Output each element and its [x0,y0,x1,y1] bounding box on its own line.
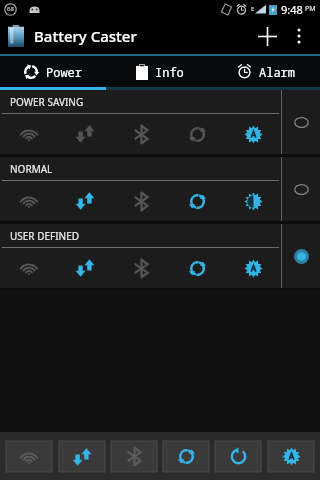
button[interactable]: Toggle [57,114,113,154]
staticText: PM [305,4,316,14]
button[interactable]: Toggle [57,181,113,221]
button[interactable]: Alarm [213,56,320,87]
button[interactable]: More options [284,21,314,51]
button[interactable]: Toggle [169,114,225,154]
staticText: POWER SAVING [10,95,84,109]
button[interactable]: Toggle [169,248,225,288]
button[interactable]: Toggle [113,248,169,288]
button[interactable]: Toggle [0,114,57,154]
button[interactable]: NORMAL [0,157,320,221]
button[interactable]: Power [0,56,106,87]
button[interactable]: Toggle [0,248,57,288]
button[interactable]: Toggle [57,248,113,288]
button[interactable]: Mobile data [59,441,105,472]
button[interactable]: POWER SAVING [0,90,320,154]
button[interactable]: Toggle [113,181,169,221]
staticText: Battery Caster [34,26,137,46]
staticText: Power [46,64,83,80]
button[interactable]: Add profile [250,19,284,53]
button[interactable]: USER DEFINED [0,224,320,288]
button[interactable]: Rotation [215,441,261,472]
button[interactable]: Brightness [268,441,314,472]
staticText: 68 [7,5,14,13]
staticText: USER DEFINED [10,229,80,243]
button[interactable]: Toggle [225,114,281,154]
button[interactable]: Info [106,56,213,87]
button[interactable]: Select USER DEFINED profile [282,224,320,288]
button[interactable]: Sync [163,441,209,472]
button[interactable]: Toggle [225,181,281,221]
button[interactable]: Bluetooth [111,441,157,472]
button[interactable]: Toggle [0,181,57,221]
staticText: Info [155,64,184,80]
button[interactable]: Toggle [225,248,281,288]
staticText: 9:48 [281,2,303,17]
button[interactable]: Select NORMAL profile [282,157,320,221]
button[interactable]: Wi-Fi [6,441,52,472]
button[interactable]: Select POWER SAVING profile [282,90,320,154]
button[interactable]: Toggle [113,114,169,154]
button[interactable]: Toggle [169,181,225,221]
staticText: NORMAL [10,162,53,176]
staticText: Alarm [259,64,296,80]
staticText: E [251,5,255,13]
